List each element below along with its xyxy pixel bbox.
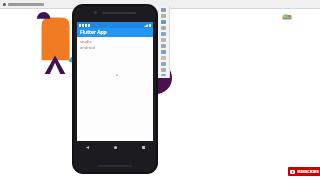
other: Tool window xyxy=(161,74,166,76)
other: Tool window xyxy=(161,32,166,36)
other: Tool window xyxy=(161,68,166,72)
button[interactable]: SUBSCRIBE xyxy=(288,167,320,176)
staticText: SUBSCRIBE xyxy=(297,169,319,174)
staticText: Flutter App xyxy=(80,29,107,36)
other: Tool window xyxy=(161,62,166,66)
other: Tool window xyxy=(161,14,166,18)
other: Tool window xyxy=(161,20,166,24)
other: Tool window xyxy=(161,50,166,54)
button[interactable]: Recents xyxy=(140,144,146,150)
other: Tool window xyxy=(161,56,166,60)
other: Tool window xyxy=(161,8,166,12)
other: Tool window xyxy=(161,38,166,42)
button[interactable]: Back xyxy=(84,144,90,150)
button[interactable]: Home xyxy=(112,144,118,150)
button[interactable]: Flutter App xyxy=(77,28,153,37)
other: Tool window xyxy=(161,26,166,30)
staticText: android xyxy=(80,45,95,50)
staticText: studio xyxy=(80,39,92,44)
button[interactable]: App icon xyxy=(281,12,293,24)
other: Tool window xyxy=(161,44,166,48)
